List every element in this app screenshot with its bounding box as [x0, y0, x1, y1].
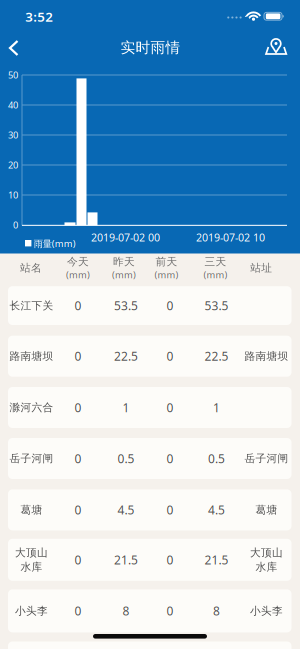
staticText: 岳子河闸 [9, 452, 53, 465]
staticText: 0 [74, 603, 81, 619]
staticText: 40 [8, 99, 18, 111]
staticText: 0 [166, 502, 173, 518]
staticText: 0 [166, 298, 173, 313]
staticText: 21.5 [204, 552, 228, 568]
staticText: (mm) [66, 268, 90, 281]
staticText: 0 [74, 450, 81, 466]
staticText: 4.5 [208, 502, 225, 518]
staticText: 0 [74, 502, 81, 518]
staticText: 0 [74, 298, 81, 313]
staticText: 0 [13, 219, 18, 231]
staticText: 小头李 [250, 604, 283, 617]
staticText: 站名 [20, 261, 42, 274]
staticText: 10 [8, 189, 18, 201]
staticText: 8 [213, 603, 220, 619]
staticText: 今天 [67, 255, 89, 268]
staticText: 21.5 [114, 552, 138, 568]
button[interactable]: 路南塘坝 [8, 336, 291, 377]
staticText: 长江下关 [9, 299, 53, 312]
staticText: 站址 [250, 261, 272, 274]
staticText: 水库 [20, 560, 42, 573]
staticText: 滁河六合 [9, 401, 53, 414]
staticText: 1 [213, 399, 220, 415]
button[interactable]: 小头李 [8, 589, 291, 632]
staticText: 30 [8, 129, 18, 141]
button[interactable]: 大顶山 [8, 539, 291, 581]
staticText: 路南塘坝 [9, 350, 53, 363]
staticText: 大顶山 [15, 546, 48, 559]
staticText: 22.5 [114, 348, 138, 364]
staticText: 岳子河闸 [244, 452, 288, 465]
staticText: 小头李 [15, 604, 48, 617]
staticText: 20 [8, 159, 18, 171]
button[interactable] [0, 32, 29, 62]
staticText: 0.5 [208, 450, 225, 466]
button[interactable]: 葛塘 [8, 489, 291, 530]
staticText: 葛塘 [255, 503, 277, 516]
staticText: 三天 [204, 255, 226, 268]
staticText: 53.5 [114, 298, 138, 313]
staticText: 水库 [255, 560, 277, 573]
staticText: 大顶山 [250, 546, 283, 559]
staticText: (mm) [154, 268, 178, 281]
staticText: 实时雨情 [120, 38, 180, 56]
staticText: 0 [166, 399, 173, 415]
staticText: 2019-07-02 10 [196, 230, 265, 244]
staticText: 葛塘 [20, 503, 42, 516]
staticText: 0 [74, 399, 81, 415]
staticText: 0 [166, 450, 173, 466]
staticText: 3:52 [25, 8, 53, 25]
staticText: (mm) [203, 268, 227, 281]
staticText: 0 [166, 603, 173, 619]
staticText: 2019-07-02 00 [91, 230, 160, 244]
staticText: 路南塘坝 [244, 350, 288, 363]
staticText: 1 [122, 399, 129, 415]
staticText: 雨量(mm) [34, 237, 76, 250]
staticText: 0 [166, 552, 173, 568]
button[interactable]: 长江下关 [8, 286, 291, 325]
staticText: 4.5 [117, 502, 134, 518]
button[interactable]: 岳子河闸 [8, 438, 291, 479]
staticText: 50 [8, 69, 18, 81]
staticText: 昨天 [113, 255, 135, 268]
staticText: 22.5 [204, 348, 228, 364]
staticText: 0 [166, 348, 173, 364]
button[interactable] [261, 32, 291, 62]
staticText: 0.5 [117, 450, 134, 466]
staticText: 0 [74, 348, 81, 364]
staticText: 53.5 [204, 298, 228, 313]
staticText: 前天 [155, 255, 177, 268]
button[interactable]: 滁河六合 [8, 387, 291, 428]
staticText: 0 [74, 552, 81, 568]
staticText: (mm) [112, 268, 136, 281]
staticText: 8 [122, 603, 129, 619]
